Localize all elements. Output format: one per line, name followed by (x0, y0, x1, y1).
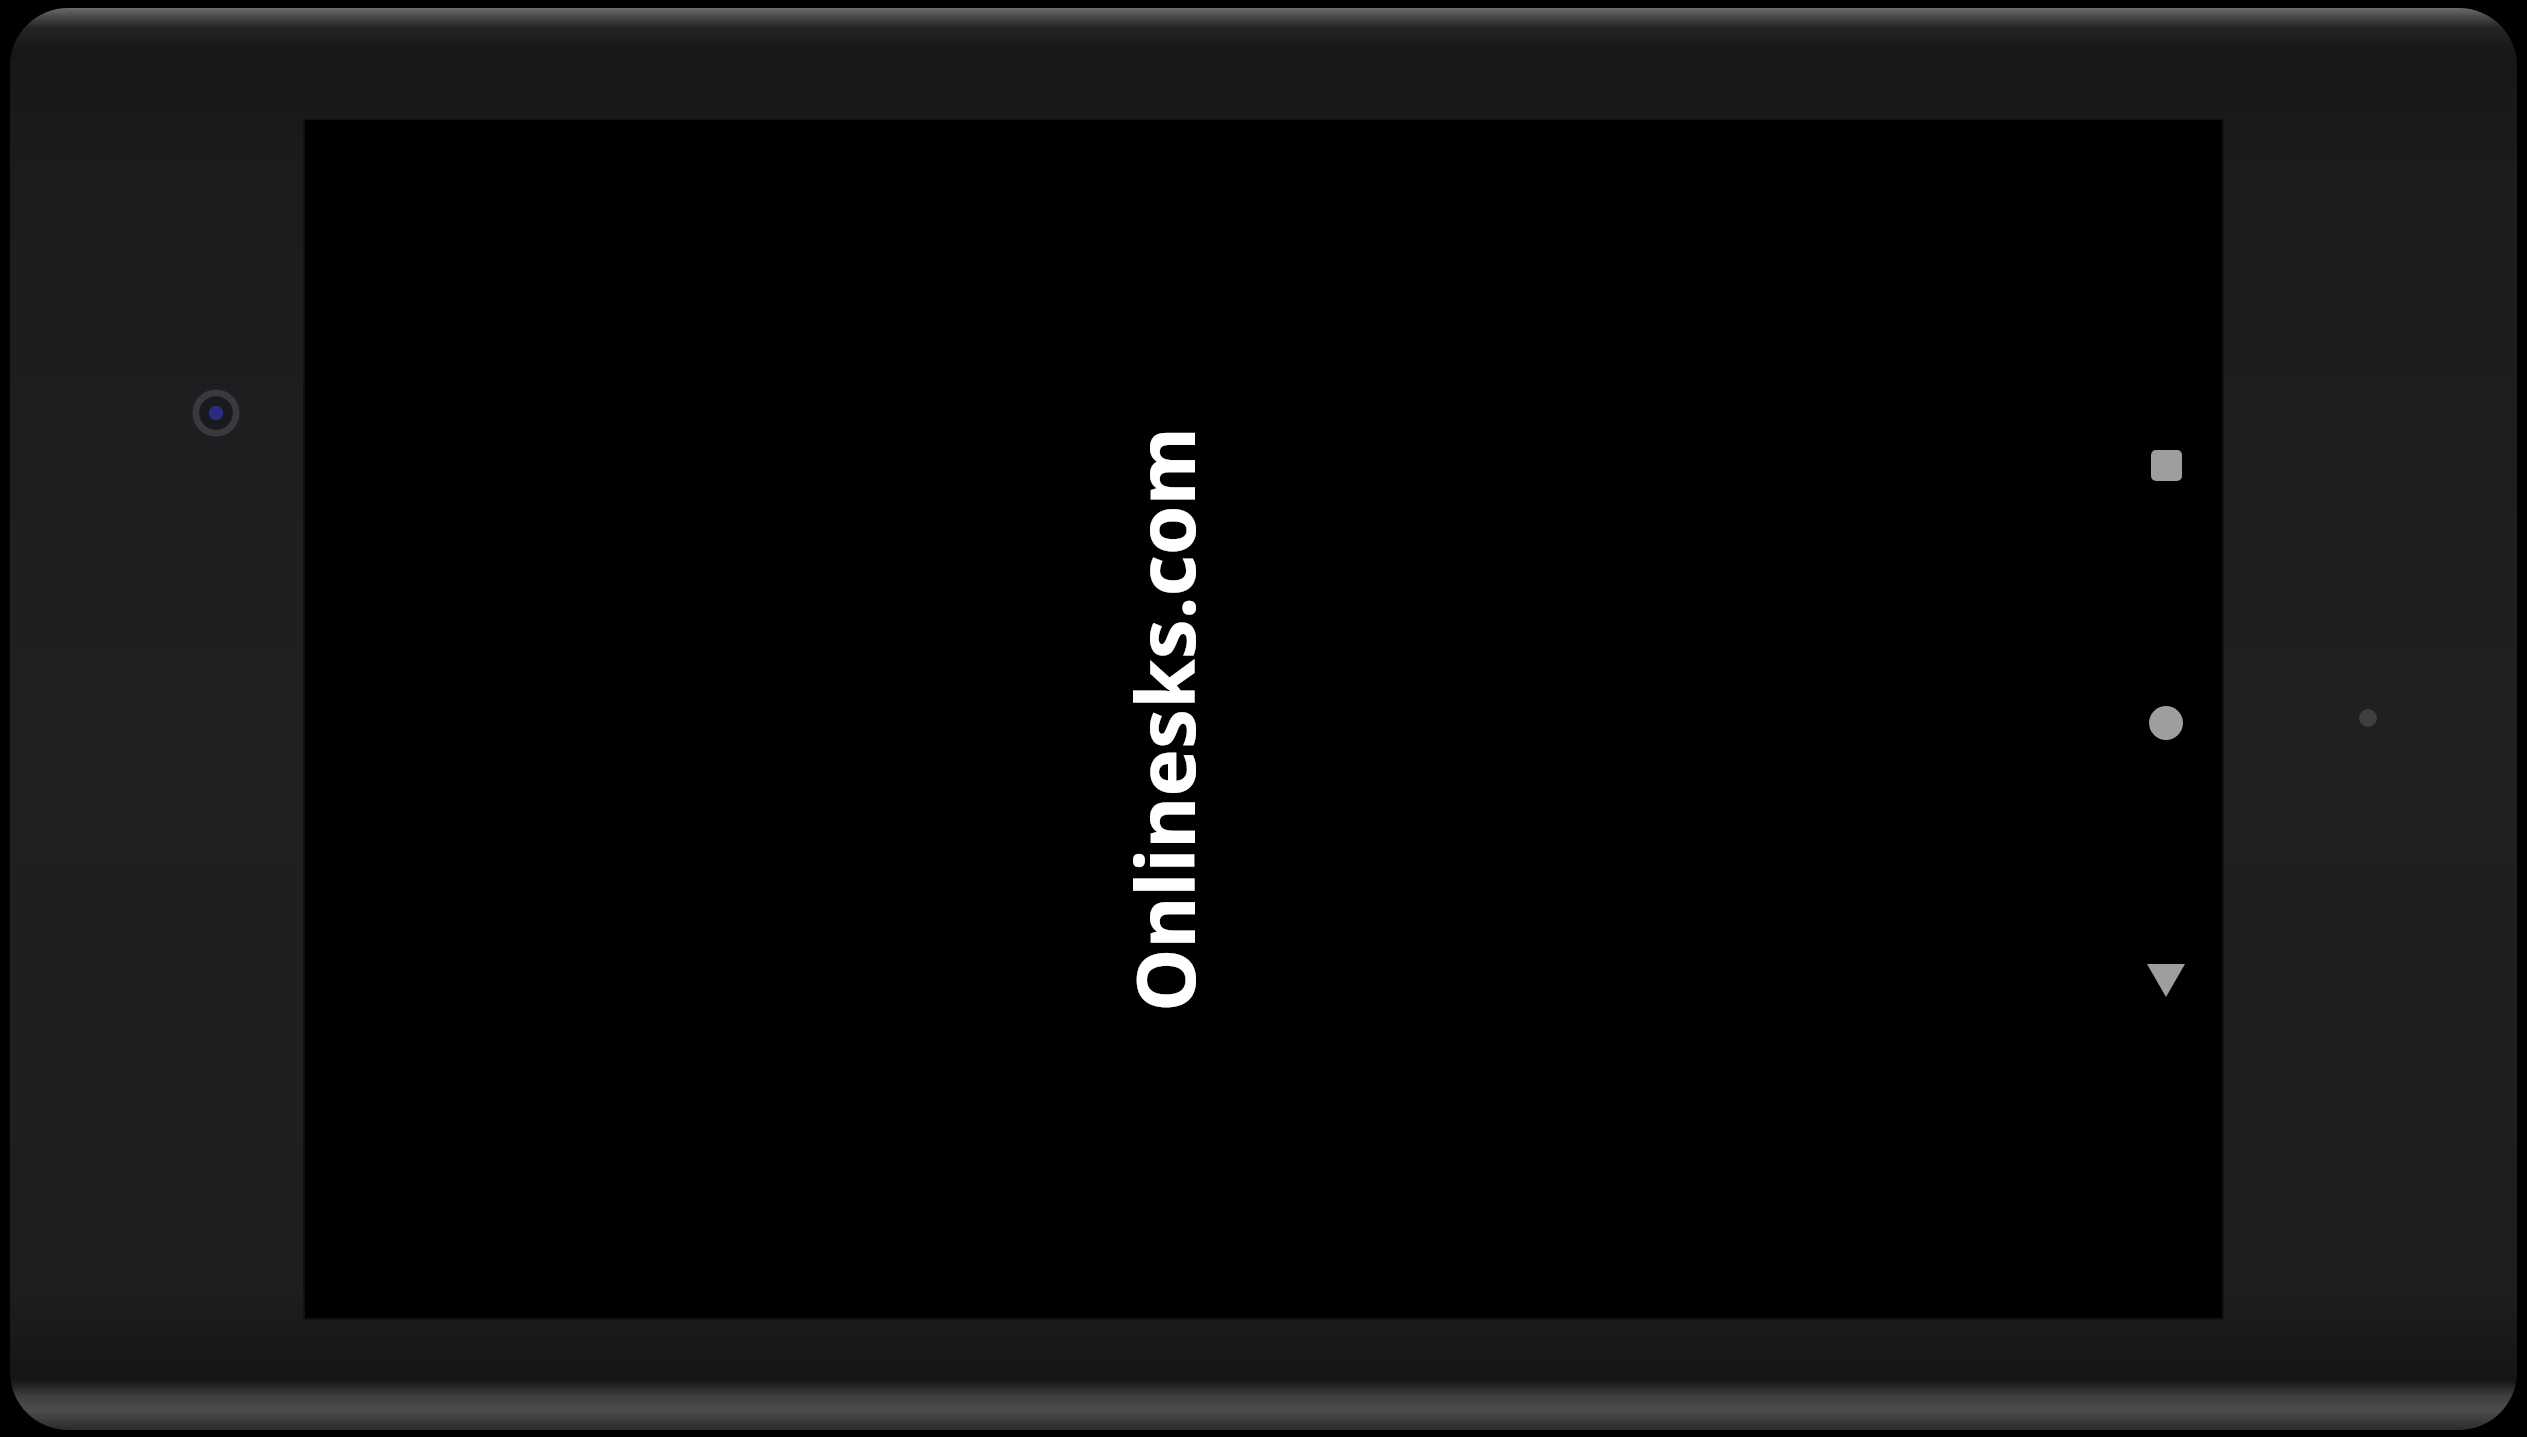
button[interactable]: Home (2126, 683, 2206, 763)
button[interactable]: Recent apps (2126, 425, 2206, 505)
button[interactable]: Back (2126, 940, 2206, 1020)
button[interactable]: Onlinesks.com (1109, 427, 1218, 1012)
